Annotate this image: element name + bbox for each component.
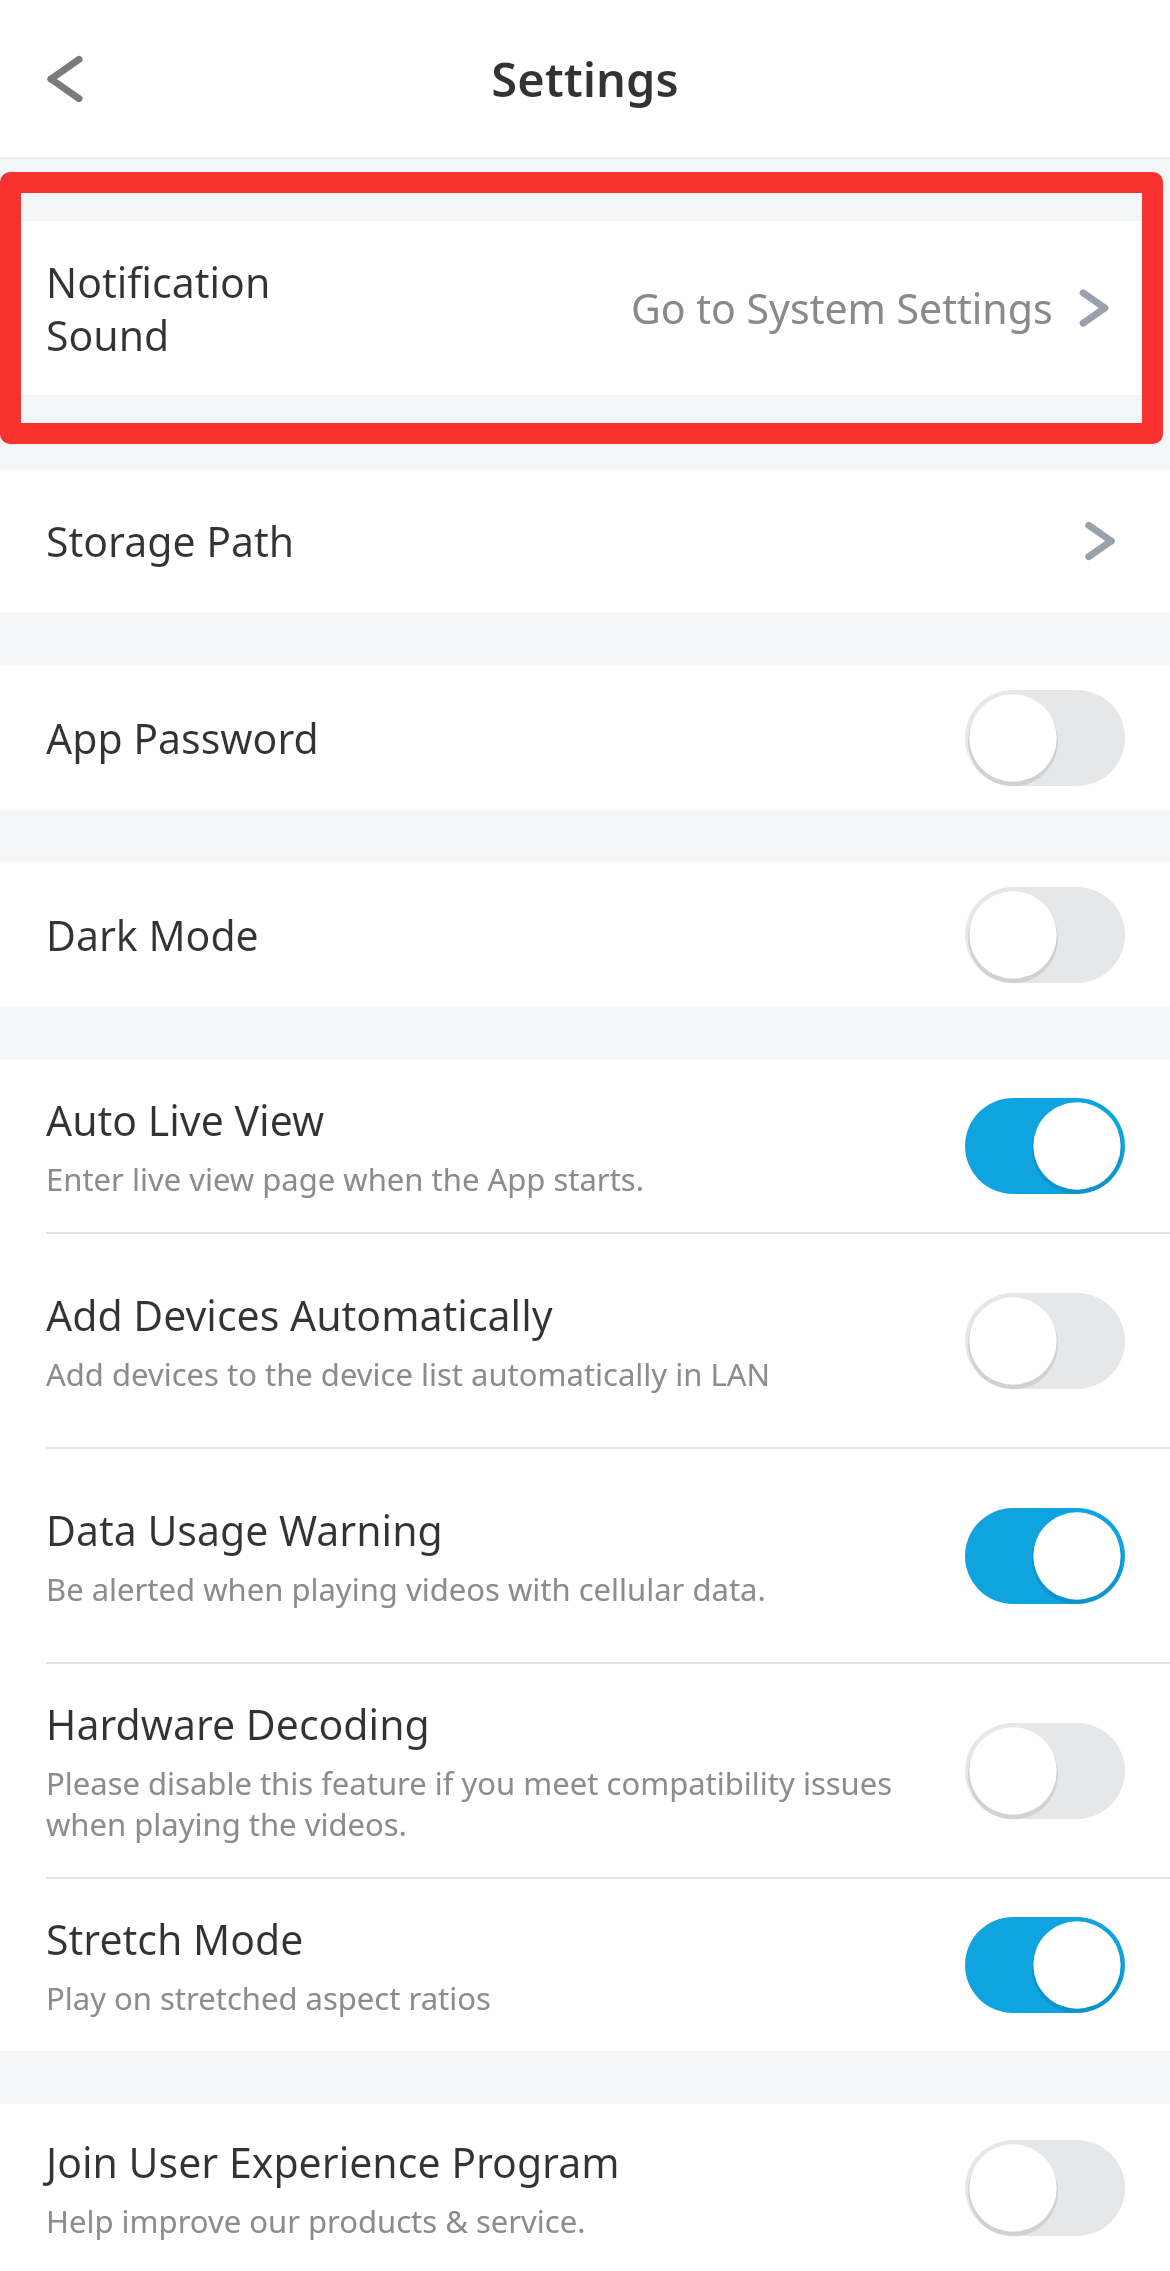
staticText: App Password [46, 710, 319, 766]
staticText: Notification Sound [46, 254, 346, 363]
staticText: Join User Experience Program [46, 2134, 620, 2190]
staticText: Dark Mode [46, 907, 259, 963]
button[interactable]: Back [22, 36, 108, 122]
staticText: Be alerted when playing videos with cell… [46, 1568, 766, 1610]
button[interactable]: Join User Experience Program [0, 2104, 1170, 2271]
button[interactable] [965, 1917, 1125, 2013]
button[interactable]: Notification Sound [21, 221, 1142, 395]
button[interactable] [965, 1723, 1125, 1819]
button[interactable] [965, 887, 1125, 983]
button[interactable]: Storage Path [0, 470, 1170, 612]
button[interactable]: Add Devices Automatically [0, 1234, 1170, 1447]
staticText: Storage Path [46, 513, 295, 569]
staticText: Please disable this feature if you meet … [46, 1762, 941, 1845]
button[interactable]: App Password [0, 665, 1170, 810]
staticText: Data Usage Warning [46, 1502, 443, 1558]
button[interactable] [965, 690, 1125, 786]
staticText: Go to System Settings [631, 280, 1053, 336]
staticText: Add Devices Automatically [46, 1287, 553, 1343]
button[interactable] [965, 1293, 1125, 1389]
staticText: Stretch Mode [46, 1911, 304, 1967]
button[interactable] [965, 1508, 1125, 1604]
button[interactable] [965, 2140, 1125, 2236]
button[interactable]: Data Usage Warning [0, 1449, 1170, 1662]
staticText: Help improve our products & service. [46, 2200, 586, 2242]
staticText: Auto Live View [46, 1092, 325, 1148]
staticText: Hardware Decoding [46, 1696, 430, 1752]
button[interactable]: Dark Mode [0, 862, 1170, 1007]
button[interactable]: Hardware Decoding [0, 1664, 1170, 1877]
staticText: Play on stretched aspect ratios [46, 1977, 491, 2019]
staticText: Enter live view page when the App starts… [46, 1158, 645, 1200]
button[interactable] [965, 1098, 1125, 1194]
staticText: Add devices to the device list automatic… [46, 1353, 771, 1395]
button[interactable]: Stretch Mode [0, 1879, 1170, 2051]
button[interactable]: Auto Live View [0, 1060, 1170, 1232]
staticText: Settings [491, 47, 679, 111]
